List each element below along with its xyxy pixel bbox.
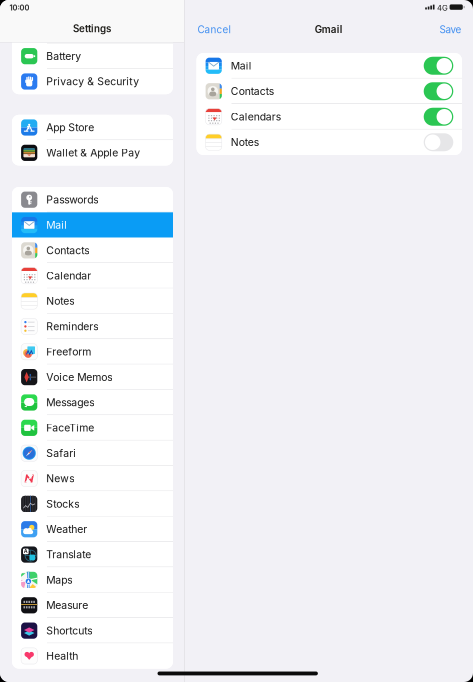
button[interactable]: Mail bbox=[196, 53, 462, 78]
staticText: Mail bbox=[46, 219, 67, 231]
button[interactable]: Contacts bbox=[12, 238, 173, 263]
staticText: Shortcuts bbox=[46, 624, 92, 637]
button[interactable]: Safari bbox=[12, 440, 173, 466]
button[interactable]: Privacy & Security bbox=[12, 69, 173, 94]
staticText: Messages bbox=[46, 396, 94, 409]
button[interactable]: FaceTime bbox=[12, 415, 173, 440]
staticText: Health bbox=[46, 650, 78, 662]
button[interactable]: A bbox=[12, 542, 173, 567]
button[interactable]: Wallet & Apple Pay bbox=[12, 140, 173, 166]
staticText: Translate bbox=[46, 548, 91, 561]
button[interactable]: Cancel bbox=[193, 19, 236, 40]
staticText: Voice Memos bbox=[46, 371, 112, 383]
button[interactable]: Maps bbox=[12, 567, 173, 593]
button[interactable]: Reminders bbox=[12, 314, 173, 339]
button[interactable]: General bbox=[12, 18, 173, 43]
staticText: App Store bbox=[46, 121, 94, 134]
staticText: 10:00 bbox=[9, 3, 29, 12]
button[interactable]: Stocks bbox=[12, 491, 173, 517]
staticText: Maps bbox=[46, 574, 72, 586]
staticText: Cancel bbox=[198, 24, 231, 35]
button[interactable]: App Store bbox=[12, 115, 173, 140]
staticText: Save bbox=[439, 24, 461, 35]
staticText: Notes bbox=[46, 295, 74, 307]
staticText: Wallet & Apple Pay bbox=[46, 146, 140, 159]
staticText: News bbox=[46, 472, 74, 485]
button[interactable]: Measure bbox=[12, 593, 173, 618]
staticText: Battery bbox=[46, 50, 81, 62]
button[interactable]: Health bbox=[12, 643, 173, 669]
staticText: Contacts bbox=[231, 85, 274, 98]
staticText: Safari bbox=[46, 447, 76, 459]
staticText: FaceTime bbox=[46, 421, 94, 434]
button[interactable]: Notes bbox=[12, 288, 173, 314]
button[interactable]: Battery bbox=[12, 43, 173, 69]
button[interactable]: Weather bbox=[12, 516, 173, 542]
staticText: Calendar bbox=[46, 269, 91, 282]
button[interactable]: Messages bbox=[12, 390, 173, 415]
button[interactable]: Save bbox=[434, 19, 466, 40]
staticText: Calendars bbox=[231, 110, 281, 123]
button[interactable]: Calendar bbox=[12, 263, 173, 288]
staticText: Privacy & Security bbox=[46, 75, 139, 88]
button[interactable]: Voice Memos bbox=[12, 364, 173, 390]
staticText: Stocks bbox=[46, 498, 79, 510]
button[interactable]: Passwords bbox=[12, 187, 173, 212]
button[interactable]: Contacts bbox=[196, 78, 462, 104]
button[interactable]: Shortcuts bbox=[12, 618, 173, 643]
button[interactable]: Freeform bbox=[12, 339, 173, 364]
button[interactable]: Calendars bbox=[196, 104, 462, 129]
staticText: Weather bbox=[46, 523, 87, 535]
staticText: Reminders bbox=[46, 320, 98, 333]
staticText: Measure bbox=[46, 599, 88, 612]
staticText: A bbox=[24, 548, 28, 554]
staticText: 4G bbox=[437, 3, 448, 13]
button[interactable]: Notes bbox=[196, 129, 462, 155]
staticText: Settings bbox=[73, 23, 111, 34]
staticText: Contacts bbox=[46, 244, 89, 257]
staticText: Freeform bbox=[46, 345, 91, 358]
staticText: General bbox=[46, 24, 85, 37]
button[interactable]: Mail bbox=[12, 212, 173, 238]
staticText: Passwords bbox=[46, 193, 98, 206]
staticText: Notes bbox=[231, 136, 259, 149]
staticText: Gmail bbox=[315, 23, 343, 35]
button[interactable]: News bbox=[12, 466, 173, 491]
staticText: Mail bbox=[231, 59, 252, 72]
